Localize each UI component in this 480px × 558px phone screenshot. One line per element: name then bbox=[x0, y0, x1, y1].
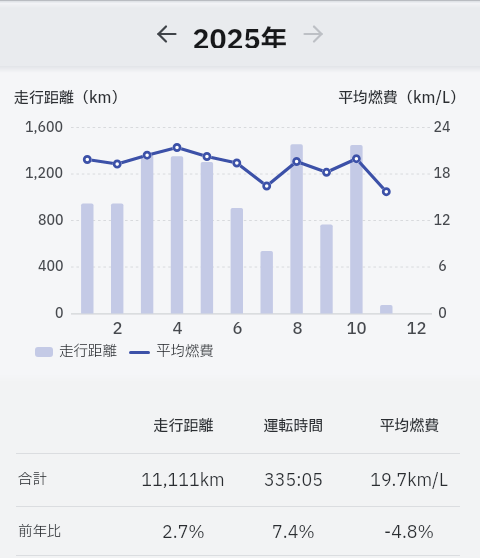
staticText: 平均燃費 bbox=[156, 341, 214, 363]
staticText: 1,600 bbox=[25, 118, 64, 138]
staticText: -4.8% bbox=[384, 520, 434, 545]
staticText: 走行距離 bbox=[153, 415, 214, 437]
staticText: 1,200 bbox=[25, 164, 64, 184]
staticText: 11,111km bbox=[141, 468, 225, 493]
staticText: 6 bbox=[438, 257, 447, 277]
staticText: 12 bbox=[406, 317, 427, 341]
staticText: 前年比 bbox=[18, 521, 62, 543]
staticText: 運転時間 bbox=[263, 415, 324, 437]
staticText: 2025年 bbox=[192, 20, 288, 48]
staticText: 18 bbox=[433, 164, 451, 184]
staticText: 24 bbox=[433, 118, 451, 138]
staticText: 2 bbox=[112, 317, 123, 341]
staticText: 6 bbox=[232, 317, 243, 341]
staticText: 走行距離（km） bbox=[14, 87, 127, 109]
button[interactable] bbox=[294, 14, 332, 54]
staticText: 800 bbox=[38, 211, 64, 231]
staticText: 400 bbox=[38, 257, 64, 277]
staticText: 10 bbox=[346, 317, 367, 341]
button[interactable] bbox=[148, 14, 186, 54]
staticText: 走行距離 bbox=[59, 341, 117, 363]
staticText: 19.7km/L bbox=[370, 468, 448, 493]
staticText: 2.7% bbox=[162, 520, 205, 545]
staticText: 0 bbox=[55, 304, 64, 324]
staticText: 4 bbox=[172, 317, 183, 341]
staticText: 合計 bbox=[18, 469, 47, 491]
staticText: 0 bbox=[438, 304, 447, 324]
staticText: 335:05 bbox=[264, 468, 323, 493]
staticText: 平均燃費（km/L） bbox=[338, 87, 466, 109]
staticText: 8 bbox=[292, 317, 303, 341]
staticText: 7.4% bbox=[272, 520, 315, 545]
staticText: 平均燃費 bbox=[379, 415, 440, 437]
staticText: 12 bbox=[433, 211, 451, 231]
